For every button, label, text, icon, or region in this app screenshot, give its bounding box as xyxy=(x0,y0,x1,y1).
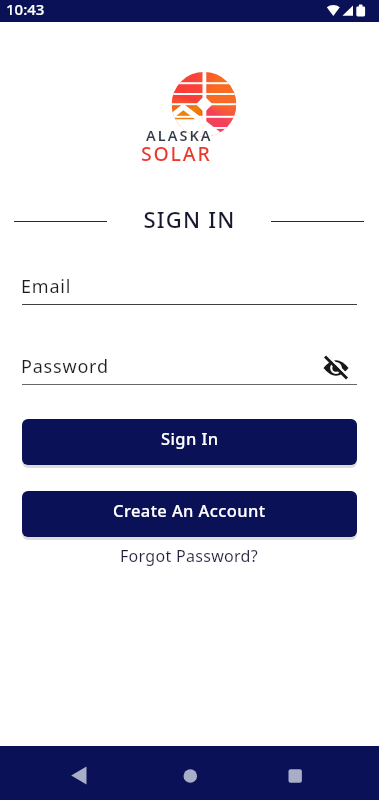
button[interactable]: Password xyxy=(0,350,379,388)
staticText: ALASKA xyxy=(146,125,213,145)
button[interactable] xyxy=(56,761,100,793)
button[interactable]: Forgot Password? xyxy=(120,545,259,567)
staticText: Email xyxy=(21,274,72,299)
button[interactable] xyxy=(322,354,350,381)
staticText: Password xyxy=(21,354,109,379)
staticText: 10:43 xyxy=(6,0,45,19)
button[interactable]: Email xyxy=(0,270,379,308)
button[interactable] xyxy=(168,761,212,793)
staticText: Sign In xyxy=(161,427,219,449)
button[interactable] xyxy=(273,761,317,793)
button[interactable]: Create An Account xyxy=(22,491,357,537)
staticText: SOLAR xyxy=(141,140,212,167)
staticText: Create An Account xyxy=(113,499,266,521)
staticText: SIGN IN xyxy=(0,204,379,234)
button[interactable]: Sign In xyxy=(22,419,357,465)
